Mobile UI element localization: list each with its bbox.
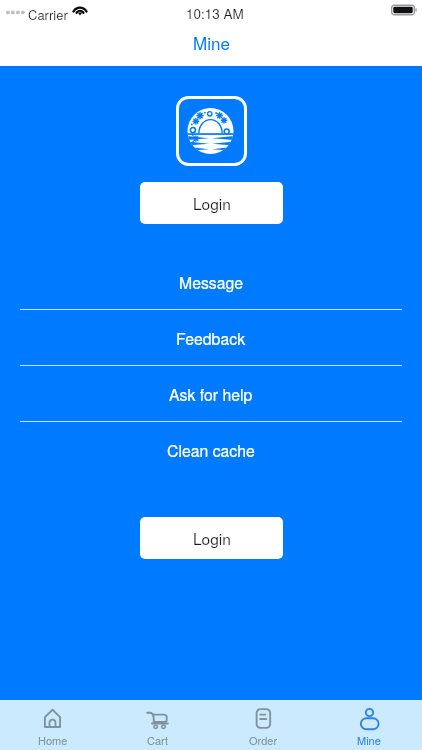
- button[interactable]: Cart: [105, 700, 210, 750]
- staticText: Clean cache: [167, 439, 255, 462]
- staticText: Home: [38, 732, 68, 748]
- button[interactable]: Order: [210, 700, 316, 750]
- button[interactable]: Login: [140, 517, 283, 559]
- staticText: Order: [249, 732, 278, 748]
- staticText: Mine: [193, 30, 230, 54]
- button[interactable]: App logo: [176, 96, 247, 166]
- staticText: Login: [193, 527, 231, 549]
- staticText: 10:13 AM: [186, 4, 244, 23]
- button[interactable]: Home: [0, 700, 105, 750]
- staticText: Ask for help: [169, 383, 253, 406]
- button[interactable]: Message: [0, 254, 422, 310]
- staticText: Carrier: [28, 5, 68, 24]
- button[interactable]: Login: [140, 182, 283, 224]
- button[interactable]: Feedback: [0, 310, 422, 366]
- button[interactable]: Clean cache: [0, 422, 422, 478]
- staticText: Login: [193, 192, 231, 214]
- staticText: Mine: [357, 732, 381, 748]
- button[interactable]: Ask for help: [0, 366, 422, 422]
- staticText: Cart: [147, 732, 169, 748]
- staticText: Feedback: [176, 327, 246, 350]
- button[interactable]: Mine: [316, 700, 422, 750]
- staticText: Message: [179, 271, 244, 294]
